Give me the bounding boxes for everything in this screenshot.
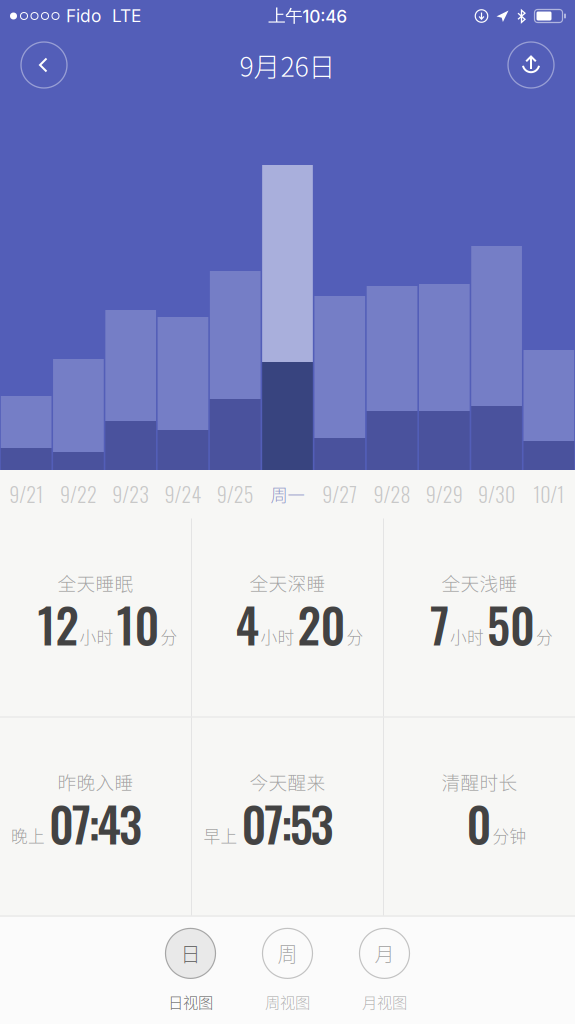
- staticText: 早上: [203, 823, 237, 847]
- staticText: 分: [160, 624, 177, 648]
- staticText: 月: [374, 939, 394, 968]
- staticText: 周: [277, 939, 297, 968]
- button[interactable]: Share: [508, 42, 554, 88]
- staticText: 9月26日: [239, 46, 335, 84]
- staticText: 9/21: [9, 479, 43, 509]
- staticText: LTE: [112, 5, 141, 26]
- button[interactable]: 月: [336, 923, 433, 1018]
- staticText: 10/1: [533, 479, 564, 509]
- staticText: 晚上: [11, 823, 45, 847]
- staticText: 小时: [260, 624, 294, 648]
- staticText: 9/25: [217, 479, 254, 509]
- staticText: 9/28: [373, 479, 410, 509]
- staticText: 周视图: [265, 990, 310, 1013]
- staticText: 周一: [270, 481, 304, 507]
- staticText: 分钟: [492, 823, 526, 847]
- staticText: 9/30: [478, 479, 515, 509]
- staticText: 全天睡眠: [57, 569, 133, 596]
- staticText: 月视图: [362, 990, 407, 1013]
- staticText: 小时: [450, 624, 484, 648]
- staticText: 分: [346, 624, 363, 648]
- staticText: 07:43: [49, 789, 142, 858]
- staticText: 9/22: [60, 479, 97, 509]
- staticText: 9/24: [164, 479, 201, 509]
- staticText: Fido: [66, 5, 101, 26]
- staticText: 日视图: [168, 990, 213, 1013]
- button[interactable]: 周: [239, 923, 336, 1018]
- button[interactable]: 日: [142, 923, 239, 1018]
- staticText: 07:53: [241, 789, 334, 858]
- staticText: 7: [430, 590, 449, 659]
- staticText: 今天醒来: [249, 768, 325, 795]
- staticText: 0: [466, 789, 491, 858]
- staticText: 9/23: [112, 479, 149, 509]
- button[interactable]: Back: [21, 42, 67, 88]
- staticText: 9/29: [426, 479, 463, 509]
- staticText: 全天浅睡: [441, 569, 517, 596]
- staticText: 12: [37, 590, 78, 659]
- staticText: 全天深睡: [249, 569, 325, 596]
- staticText: 清醒时长: [441, 768, 517, 795]
- staticText: 日: [180, 939, 200, 968]
- staticText: 上午10:46: [268, 5, 347, 27]
- staticText: 小时: [79, 624, 113, 648]
- staticText: 昨晚入睡: [57, 768, 133, 795]
- staticText: 20: [297, 590, 345, 659]
- staticText: 分: [536, 624, 553, 648]
- staticText: 10: [116, 590, 159, 659]
- staticText: 9/27: [322, 479, 357, 509]
- staticText: 50: [487, 590, 535, 659]
- staticText: 4: [235, 590, 259, 659]
